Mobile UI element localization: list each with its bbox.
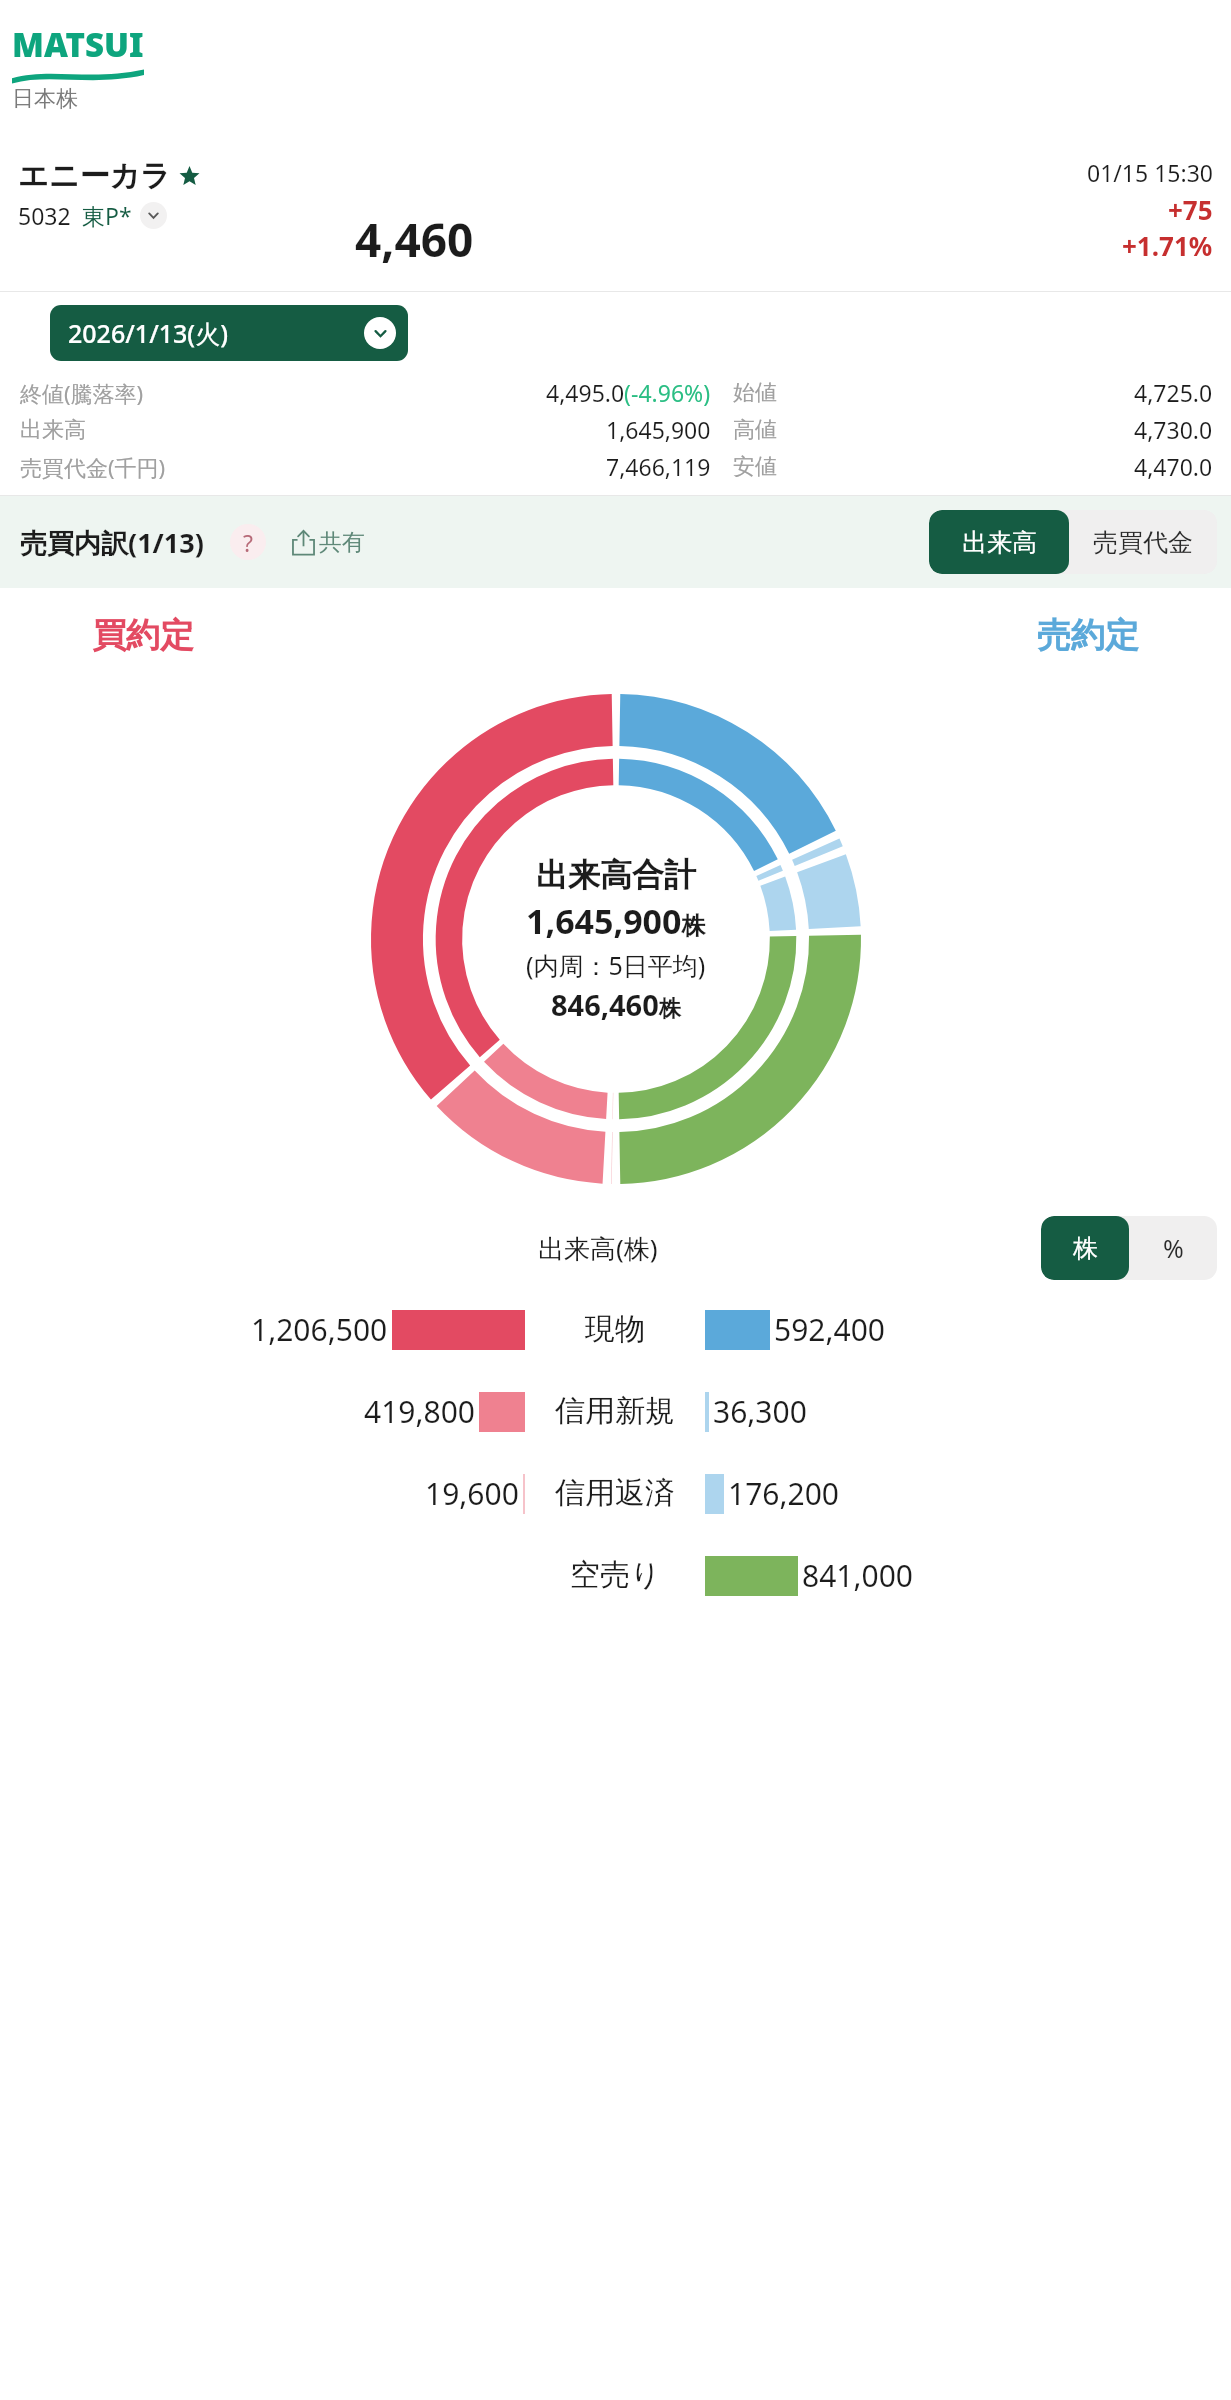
other: Favorite (179, 166, 200, 187)
staticText: 4,460 (355, 208, 474, 271)
button[interactable]: 2026/1/13(火) (50, 305, 408, 361)
staticText: ? (243, 527, 253, 558)
staticText: 出来高(株) (538, 1230, 658, 1266)
staticText: 5032 (18, 200, 71, 231)
button[interactable]: 株 (1041, 1216, 1129, 1280)
staticText: 176,200 (728, 1473, 839, 1514)
staticText: 現物 (585, 1310, 645, 1348)
button[interactable]: 売買代金 (1069, 510, 1217, 574)
button[interactable]: Help (230, 524, 266, 560)
button[interactable]: 共有 (286, 524, 369, 561)
staticText: 売買代金(千円) (20, 452, 166, 482)
staticText: MATSUI (12, 22, 144, 67)
staticText: 4,495.0(-4.96%) (546, 377, 711, 408)
staticText: 01/15 15:30 (1087, 157, 1213, 188)
staticText: 4,725.0 (1134, 377, 1213, 408)
staticText: 846,460株 (551, 985, 681, 1024)
staticText: 出来高合計 (536, 855, 696, 895)
staticText: 共有 (319, 528, 365, 557)
staticText: 信用返済 (555, 1474, 675, 1512)
staticText: 1,645,900株 (526, 898, 706, 944)
staticText: 1,645,900 (606, 414, 711, 445)
staticText: +75 (1168, 192, 1213, 227)
staticText: +1.71% (1122, 228, 1213, 263)
button[interactable]: 5032 (18, 200, 167, 231)
staticText: 2026/1/13(火) (68, 316, 228, 350)
staticText: 36,300 (713, 1391, 807, 1432)
button[interactable]: 19,600 (0, 1452, 1231, 1534)
staticText: 19,600 (425, 1473, 519, 1514)
staticText: 東P* (82, 200, 132, 231)
staticText: % (1163, 1231, 1184, 1265)
staticText: 841,000 (802, 1555, 913, 1596)
staticText: 出来高 (20, 416, 86, 444)
staticText: 1,206,500 (251, 1309, 388, 1350)
staticText: 安値 (733, 453, 777, 481)
staticText: 信用新規 (555, 1392, 675, 1430)
button[interactable]: 1,206,500 (0, 1288, 1231, 1370)
staticText: 419,800 (364, 1391, 475, 1432)
button[interactable]: % (1129, 1216, 1217, 1280)
staticText: 高値 (733, 416, 777, 444)
staticText: 空売り (570, 1556, 661, 1594)
staticText: 4,470.0 (1134, 451, 1213, 482)
staticText: 出来高 (962, 527, 1037, 558)
staticText: 売買内訳(1/13) (20, 524, 204, 561)
staticText: 始値 (733, 379, 777, 407)
button[interactable]: 空売り (0, 1534, 1231, 1616)
staticText: 買約定 (92, 614, 194, 657)
staticText: 売約定 (1037, 614, 1139, 657)
staticText: 売買代金 (1093, 527, 1193, 558)
staticText: 株 (1073, 1233, 1098, 1264)
button[interactable]: 出来高 (929, 510, 1069, 574)
staticText: 7,466,119 (606, 451, 711, 482)
staticText: 592,400 (774, 1309, 885, 1350)
staticText: (内周：5日平均) (526, 948, 706, 982)
staticText: 日本株 (12, 85, 78, 113)
staticText: 4,730.0 (1134, 414, 1213, 445)
staticText: エニーカラ (18, 157, 171, 195)
staticText: 終値(騰落率) (20, 378, 144, 408)
button[interactable]: 419,800 (0, 1370, 1231, 1452)
